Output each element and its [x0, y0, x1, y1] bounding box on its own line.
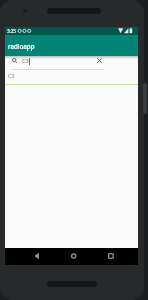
- button[interactable]: radioapp: [5, 35, 138, 56]
- staticText: 3:25: [7, 28, 16, 34]
- staticText: C3: [8, 72, 15, 79]
- staticText: C3: [22, 57, 29, 64]
- button[interactable]: [29, 248, 44, 265]
- button[interactable]: C3: [5, 71, 138, 84]
- button[interactable]: [66, 248, 81, 265]
- button[interactable]: [103, 248, 118, 265]
- staticText: radioapp: [8, 42, 35, 50]
- button[interactable]: [94, 55, 105, 66]
